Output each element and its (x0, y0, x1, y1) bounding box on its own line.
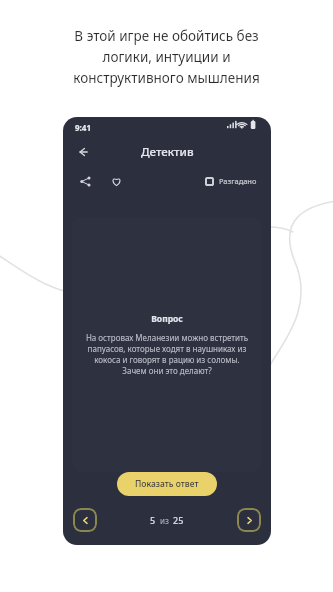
staticText: 25 (173, 514, 184, 526)
button[interactable]: Разгадано (202, 173, 260, 189)
button[interactable]: Favorite (105, 170, 127, 192)
staticText: На островах Меланезии можно встретить па… (84, 332, 250, 376)
staticText: 5 (150, 514, 156, 526)
button[interactable]: Previous (73, 508, 97, 532)
button[interactable]: Back (71, 140, 95, 164)
staticText: из (160, 515, 169, 526)
staticText: Вопрос (151, 313, 183, 325)
button[interactable]: Next (237, 508, 261, 532)
staticText: конструктивного мышления (73, 69, 260, 87)
staticText: 9:41 (75, 122, 91, 133)
staticText: В этой игре не обойтись без (74, 27, 259, 45)
staticText: Разгадано (219, 176, 257, 186)
button[interactable]: Показать ответ (117, 472, 217, 496)
staticText: Показать ответ (135, 478, 199, 490)
button[interactable]: Share (74, 170, 96, 192)
staticText: логики, интуиции и (102, 48, 231, 66)
staticText: Детектив (141, 144, 194, 160)
